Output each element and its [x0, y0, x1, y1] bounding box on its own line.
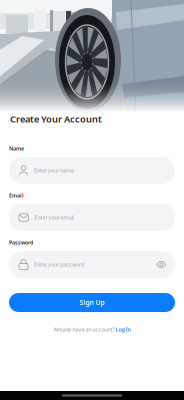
staticText: Enter your password — [34, 261, 84, 268]
button[interactable]: Enter your password — [9, 251, 175, 278]
button[interactable]: Enter your name — [9, 157, 175, 184]
button[interactable]: Log In — [115, 326, 130, 333]
staticText: Password — [9, 239, 33, 246]
staticText: Email — [9, 192, 24, 199]
staticText: Log In — [115, 326, 130, 333]
button[interactable]: Enter your email — [9, 204, 175, 231]
staticText: Name — [9, 145, 24, 152]
staticText: Already have an account? — [53, 326, 115, 333]
staticText: Sign Up — [79, 298, 104, 307]
staticText: Enter your name — [34, 167, 74, 174]
staticText: Create Your Account — [10, 113, 102, 125]
button[interactable]: Sign Up — [9, 293, 175, 312]
staticText: Enter your email — [34, 214, 73, 221]
